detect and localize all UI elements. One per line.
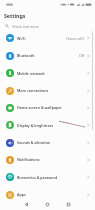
staticText: Off	[79, 53, 85, 58]
button[interactable]: Home screen & wallpaper	[0, 99, 95, 116]
button[interactable]: Recents	[62, 198, 74, 210]
button[interactable]: Check and more	[0, 22, 95, 30]
staticText: Biometrics & password	[17, 175, 58, 180]
button[interactable]: More connections	[0, 82, 95, 99]
staticText: Wi-Fi	[17, 36, 26, 41]
staticText: Settings	[4, 12, 26, 19]
staticText: Home-all-1	[66, 36, 85, 41]
button[interactable]: Mobile network	[0, 64, 95, 82]
button[interactable]: Display & brightness	[0, 116, 95, 134]
staticText: More connections	[17, 88, 49, 93]
staticText: Display & brightness	[17, 123, 54, 128]
button[interactable]: Home	[41, 198, 53, 210]
button[interactable]: Biometrics & password	[0, 168, 95, 186]
staticText: Home screen & wallpaper	[17, 105, 62, 110]
button[interactable]: Bluetooth	[0, 47, 95, 64]
button[interactable]: Back	[20, 198, 32, 210]
staticText: Notifications	[17, 157, 40, 162]
button[interactable]: Notifications	[0, 151, 95, 168]
button[interactable]: Sounds & vibration	[0, 134, 95, 151]
button[interactable]: Apps	[0, 186, 95, 203]
button[interactable]: Wi-Fi	[0, 29, 95, 47]
staticText: Check and more	[12, 24, 39, 29]
staticText: Bluetooth	[17, 53, 35, 58]
staticText: Sounds & vibration	[17, 140, 51, 145]
staticText: Apps	[17, 192, 26, 197]
staticText: Mobile network	[17, 71, 45, 76]
